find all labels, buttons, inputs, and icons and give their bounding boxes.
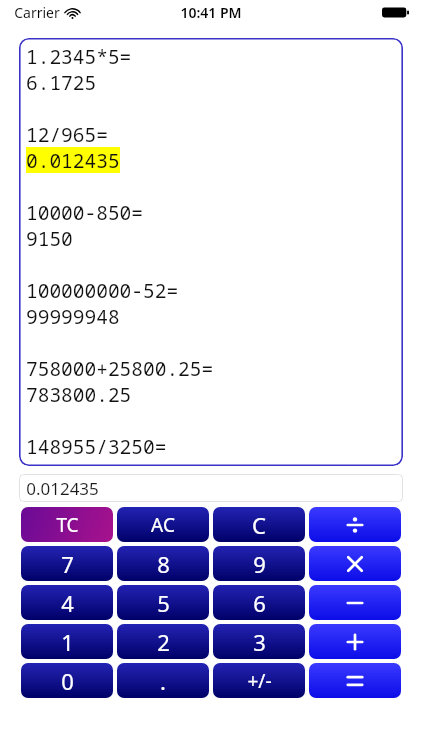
- staticText: AC: [151, 512, 175, 538]
- staticText: 6.1725: [26, 69, 97, 95]
- staticText: 0.012435: [26, 147, 120, 173]
- button[interactable]: 0.012435: [19, 474, 403, 502]
- staticText: 758000+25800.25=: [26, 355, 214, 381]
- staticText: 45.832308: [26, 459, 132, 466]
- button[interactable]: Add: [309, 624, 401, 659]
- staticText: 783800.25: [26, 381, 132, 407]
- staticText: 7: [61, 549, 74, 579]
- staticText: 8: [157, 549, 170, 579]
- staticText: 1: [61, 627, 74, 657]
- button[interactable]: AC: [117, 507, 209, 542]
- staticText: TC: [56, 512, 79, 538]
- staticText: 6: [253, 588, 266, 618]
- button[interactable]: C: [213, 507, 305, 542]
- button[interactable]: 7: [21, 546, 113, 581]
- staticText: 99999948: [26, 303, 120, 329]
- button[interactable]: Divide: [309, 507, 401, 542]
- button[interactable]: +/-: [213, 663, 305, 698]
- staticText: 1.2345*5=: [26, 43, 132, 69]
- button[interactable]: 4: [21, 585, 113, 620]
- staticText: 9: [253, 549, 266, 579]
- button[interactable]: Equals: [309, 663, 401, 698]
- button[interactable]: 5: [117, 585, 209, 620]
- staticText: 10:41 PM: [180, 3, 242, 22]
- button[interactable]: 9: [213, 546, 305, 581]
- staticText: 10000-850=: [26, 199, 144, 225]
- staticText: +/-: [247, 668, 272, 694]
- staticText: 0.012435: [26, 477, 99, 500]
- staticText: 100000000-52=: [26, 277, 179, 303]
- staticText: C: [252, 510, 266, 540]
- button[interactable]: 0: [21, 663, 113, 698]
- button[interactable]: 1.2345*5=: [19, 38, 403, 466]
- staticText: 2: [157, 627, 170, 657]
- button[interactable]: 3: [213, 624, 305, 659]
- button[interactable]: TC: [21, 507, 113, 542]
- staticText: Carrier: [14, 3, 60, 22]
- staticText: 5: [157, 588, 170, 618]
- staticText: 148955/3250=: [26, 433, 167, 459]
- button[interactable]: .: [117, 663, 209, 698]
- button[interactable]: 2: [117, 624, 209, 659]
- staticText: 4: [61, 588, 74, 618]
- staticText: .: [160, 666, 166, 696]
- button[interactable]: 1: [21, 624, 113, 659]
- button[interactable]: 8: [117, 546, 209, 581]
- button[interactable]: Multiply: [309, 546, 401, 581]
- button[interactable]: 6: [213, 585, 305, 620]
- button[interactable]: Subtract: [309, 585, 401, 620]
- staticText: 12/965=: [26, 121, 108, 147]
- staticText: 9150: [26, 225, 73, 251]
- staticText: 3: [253, 627, 266, 657]
- staticText: 0: [61, 666, 74, 696]
